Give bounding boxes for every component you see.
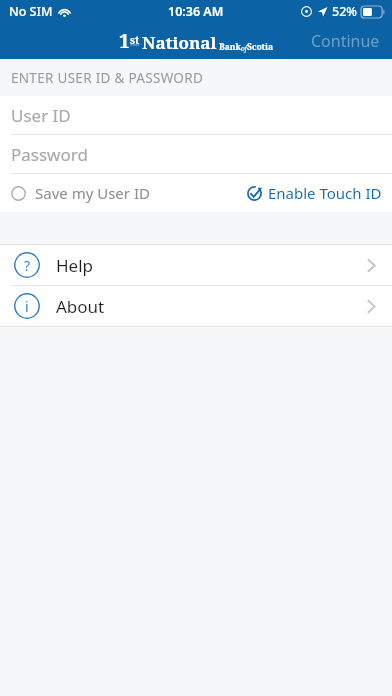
- staticText: 10:36 AM: [168, 3, 224, 20]
- staticText: Enable Touch ID: [268, 183, 382, 203]
- button[interactable]: Continue: [299, 24, 392, 58]
- staticText: st: [130, 33, 140, 47]
- staticText: Bank: [219, 41, 241, 53]
- staticText: of: [241, 44, 247, 53]
- button[interactable]: Save my User ID: [0, 177, 158, 209]
- staticText: About: [56, 295, 105, 318]
- button[interactable]: User ID: [0, 96, 392, 134]
- button[interactable]: Enable Touch ID: [239, 177, 392, 209]
- staticText: Help: [56, 254, 94, 277]
- staticText: 52%: [332, 3, 357, 20]
- button[interactable]: i: [0, 286, 392, 326]
- staticText: User ID: [11, 104, 71, 127]
- staticText: ?: [24, 256, 31, 275]
- staticText: Continue: [311, 30, 380, 52]
- staticText: Scotia: [247, 41, 274, 53]
- staticText: i: [25, 297, 29, 316]
- staticText: Password: [11, 143, 88, 166]
- button[interactable]: ?: [0, 245, 392, 285]
- staticText: ENTER USER ID & PASSWORD: [11, 69, 204, 87]
- staticText: No SIM: [9, 3, 53, 20]
- staticText: Save my User ID: [35, 183, 150, 203]
- button[interactable]: Password: [0, 135, 392, 173]
- staticText: National: [142, 31, 217, 54]
- staticText: 1: [119, 28, 130, 54]
